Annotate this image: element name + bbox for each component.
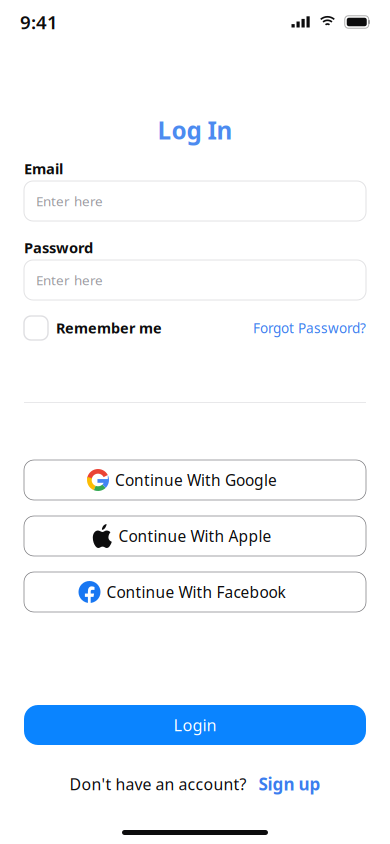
button[interactable]: Sign up xyxy=(258,772,320,796)
staticText: Password xyxy=(24,237,93,257)
button[interactable]: Enter here xyxy=(24,181,366,221)
button[interactable]: Continue With Facebook xyxy=(24,572,366,612)
button[interactable]: Login xyxy=(24,705,366,745)
button[interactable]: Continue With Google xyxy=(24,460,366,500)
button[interactable]: Enter here xyxy=(24,260,366,300)
staticText: Email xyxy=(24,158,63,178)
staticText: Continue With Facebook xyxy=(106,581,285,603)
staticText: Forgot Password? xyxy=(253,319,366,337)
staticText: Log In xyxy=(157,113,232,147)
button[interactable]: Forgot Password? xyxy=(253,319,366,337)
staticText: 9:41 xyxy=(20,9,58,35)
staticText: Login xyxy=(173,714,216,736)
button[interactable]: Continue With Apple xyxy=(24,516,366,556)
staticText: Continue With Google xyxy=(115,469,277,491)
staticText: Sign up xyxy=(258,772,320,796)
button[interactable]: Remember me xyxy=(24,316,162,340)
staticText: Don't have an account? xyxy=(69,773,246,795)
staticText: Enter here xyxy=(36,271,103,289)
staticText: Enter here xyxy=(36,192,103,210)
staticText: Remember me xyxy=(56,318,162,338)
staticText: Continue With Apple xyxy=(118,525,271,547)
